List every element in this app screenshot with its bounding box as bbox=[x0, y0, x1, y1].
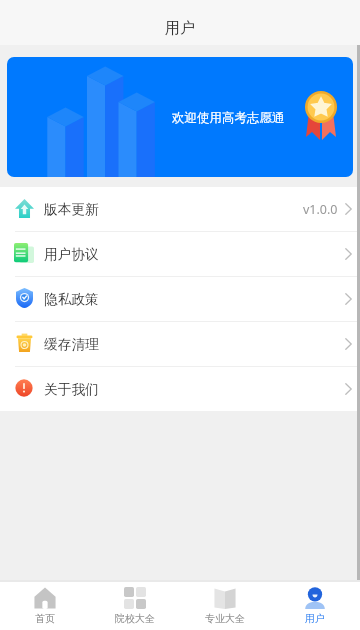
button[interactable]: 缓存清理 bbox=[0, 322, 360, 367]
button[interactable]: 隐私政策 bbox=[0, 277, 360, 322]
staticText: 首页 bbox=[35, 612, 55, 625]
button[interactable]: 欢迎使用高考志愿通 bbox=[7, 57, 353, 177]
staticText: v1.0.0 bbox=[303, 201, 338, 218]
staticText: 院校大全 bbox=[115, 612, 155, 625]
button[interactable]: 用户 bbox=[270, 580, 360, 630]
staticText: 隐私政策 bbox=[44, 291, 99, 308]
button[interactable]: 专业大全 bbox=[180, 580, 270, 630]
staticText: 用户 bbox=[165, 19, 195, 38]
staticText: 专业大全 bbox=[205, 612, 245, 625]
staticText: 用户协议 bbox=[44, 246, 99, 263]
button[interactable]: 关于我们 bbox=[0, 367, 360, 411]
button[interactable]: 院校大全 bbox=[90, 580, 180, 630]
button[interactable]: 用户协议 bbox=[0, 232, 360, 277]
button[interactable]: 版本更新 bbox=[0, 187, 360, 232]
staticText: 用户 bbox=[305, 612, 325, 625]
staticText: 缓存清理 bbox=[44, 336, 99, 353]
staticText: 关于我们 bbox=[44, 381, 99, 398]
staticText: 版本更新 bbox=[44, 201, 99, 218]
button[interactable]: 首页 bbox=[0, 580, 90, 630]
staticText: 欢迎使用高考志愿通 bbox=[172, 110, 285, 126]
